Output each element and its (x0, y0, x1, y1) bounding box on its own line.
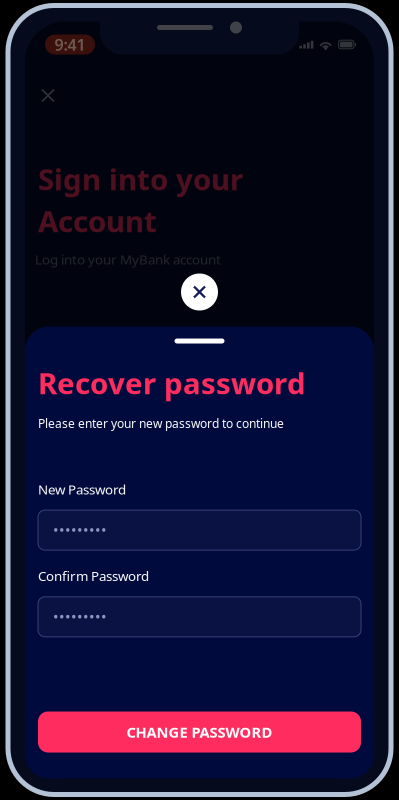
staticText: 9:41 (54, 34, 85, 55)
staticText: Sign into your (38, 159, 243, 198)
staticText: Please enter your new password to contin… (38, 415, 284, 431)
staticText: New Password (38, 480, 126, 498)
staticText: ••••••••• (53, 520, 107, 540)
button[interactable]: CHANGE PASSWORD (38, 711, 361, 752)
button[interactable]: Dismiss (181, 273, 218, 310)
staticText: Account (38, 201, 157, 240)
staticText: CHANGE PASSWORD (126, 722, 272, 742)
staticText: Confirm Password (38, 567, 149, 585)
staticText: Recover password (38, 363, 306, 402)
button[interactable]: Close (25, 70, 70, 111)
staticText: ••••••••• (53, 607, 107, 627)
staticText: Log into your MyBank account (35, 250, 221, 268)
